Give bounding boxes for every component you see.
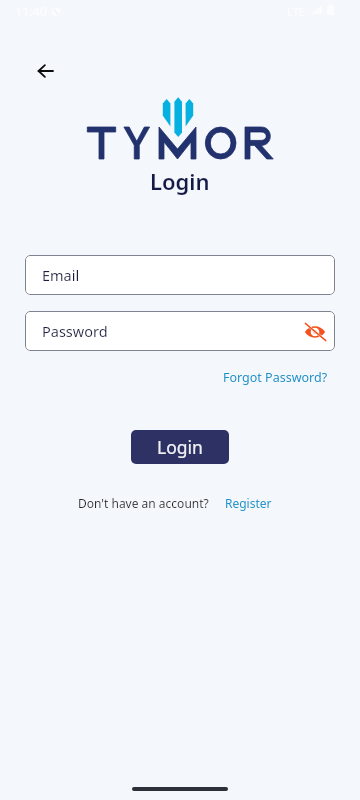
staticText: Forgot Password? xyxy=(223,369,328,386)
button[interactable]: Password xyxy=(25,311,335,351)
button[interactable]: Email xyxy=(25,255,335,295)
staticText: Login xyxy=(157,435,203,459)
button[interactable]: Toggle password visibility xyxy=(303,320,327,344)
button[interactable]: Login xyxy=(131,430,229,464)
staticText: Password xyxy=(42,321,108,341)
button[interactable]: Register xyxy=(225,495,272,511)
staticText: Login xyxy=(150,166,210,196)
staticText: Email xyxy=(42,265,80,285)
button[interactable]: Back xyxy=(28,54,62,88)
staticText: Don't have an account? xyxy=(78,495,209,511)
button[interactable]: Forgot Password? xyxy=(222,367,329,388)
staticText: Register xyxy=(225,495,272,511)
